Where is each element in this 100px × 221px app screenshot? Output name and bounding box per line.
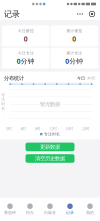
- button[interactable]: 更新数据: [25, 143, 74, 151]
- button[interactable]: 记录: [60, 198, 80, 221]
- staticText: 专注时长: [44, 132, 60, 136]
- staticText: 12时: [49, 126, 57, 131]
- staticText: 今日番茄: [18, 28, 34, 33]
- staticText: 累计专注: [66, 51, 82, 56]
- button[interactable]: 清空历史数据: [25, 154, 74, 163]
- staticText: 0时: [6, 126, 12, 131]
- staticText: 专: [1, 92, 5, 97]
- button[interactable]: 累计专注: [51, 48, 98, 69]
- staticText: 清空历史数据: [35, 155, 65, 162]
- staticText: 本周: [87, 76, 95, 80]
- staticText: 8时: [35, 126, 41, 131]
- staticText: 0分钟: [17, 57, 35, 65]
- staticText: 记录: [4, 9, 20, 19]
- button[interactable]: 今日番茄: [2, 25, 49, 46]
- button[interactable]: 待办: [20, 198, 40, 221]
- staticText: 0: [72, 34, 76, 43]
- staticText: 0分钟: [65, 57, 83, 65]
- button[interactable]: Profile: [87, 8, 97, 19]
- staticText: 时: [1, 101, 5, 106]
- staticText: 更新数据: [40, 144, 60, 150]
- staticText: 4时: [20, 126, 26, 131]
- button[interactable]: 累计番茄: [51, 25, 98, 46]
- staticText: 暂无数据: [40, 101, 60, 107]
- staticText: 16时: [65, 126, 73, 131]
- staticText: 白噪音: [44, 210, 56, 215]
- button[interactable]: More: [75, 8, 85, 19]
- staticText: 记录: [66, 210, 74, 215]
- button[interactable]: 今日专注: [2, 48, 49, 69]
- button[interactable]: 本周: [87, 76, 95, 80]
- staticText: 分布统计: [4, 75, 24, 81]
- staticText: 今日: [77, 76, 85, 80]
- staticText: 待办: [26, 210, 34, 215]
- staticText: 累计番茄: [66, 28, 82, 33]
- staticText: 长: [1, 106, 5, 111]
- button[interactable]: 白噪音: [40, 198, 60, 221]
- staticText: 注: [1, 97, 5, 102]
- staticText: 20时: [82, 126, 90, 131]
- staticText: 今日专注: [18, 51, 34, 56]
- button[interactable]: 今日: [77, 76, 85, 80]
- staticText: 番茄钟: [4, 210, 16, 215]
- button[interactable]: 番茄钟: [0, 198, 20, 221]
- staticText: -: [3, 110, 4, 116]
- button[interactable]: 我的: [80, 198, 100, 221]
- staticText: 我的: [86, 210, 94, 215]
- staticText: 0: [24, 34, 28, 43]
